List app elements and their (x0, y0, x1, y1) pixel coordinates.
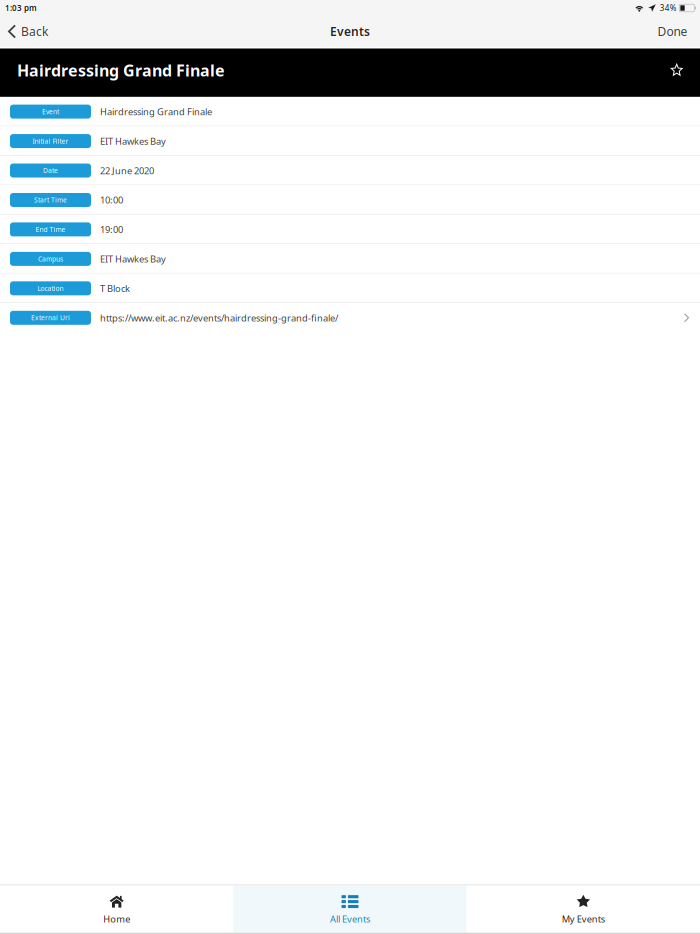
button[interactable]: End Time (0, 215, 700, 244)
staticText: Event (42, 107, 59, 116)
staticText: 22 June 2020 (100, 164, 154, 177)
button[interactable]: Event (0, 97, 700, 126)
staticText: Back (21, 23, 48, 39)
staticText: 1:03 pm (5, 3, 37, 13)
staticText: Home (103, 913, 130, 925)
staticText: EIT Hawkes Bay (100, 253, 166, 265)
staticText: External Url (31, 313, 70, 322)
button[interactable]: All Events (233, 886, 467, 933)
staticText: Initial Filter (32, 137, 68, 145)
staticText: Location (37, 284, 63, 293)
staticText: https://www.eit.ac.nz/events/hairdressin… (100, 312, 338, 324)
staticText: End Time (35, 225, 65, 234)
button[interactable]: My Events (467, 886, 700, 933)
staticText: Hairdressing Grand Finale (100, 105, 212, 118)
staticText: My Events (562, 913, 605, 925)
staticText: Campus (38, 254, 63, 263)
button[interactable]: Done (649, 16, 700, 46)
button[interactable]: External Url (0, 303, 700, 332)
staticText: All Events (330, 913, 370, 925)
button[interactable]: Add to favourites (671, 64, 700, 81)
button[interactable]: Location (0, 274, 700, 303)
staticText: Done (657, 23, 687, 39)
button[interactable]: Campus (0, 244, 700, 274)
button[interactable]: Initial Filter (0, 126, 700, 156)
staticText: 34% (660, 3, 677, 13)
staticText: Date (43, 166, 58, 175)
button[interactable]: Date (0, 156, 700, 185)
staticText: Hairdressing Grand Finale (17, 60, 225, 81)
staticText: Events (330, 23, 370, 39)
staticText: 10:00 (100, 194, 123, 206)
staticText: 19:00 (100, 223, 123, 236)
staticText: Start Time (34, 195, 67, 204)
staticText: T Block (100, 282, 130, 294)
staticText: EIT Hawkes Bay (100, 135, 166, 147)
button[interactable]: Start Time (0, 185, 700, 215)
button[interactable]: Home (0, 886, 233, 933)
button[interactable]: Back (0, 16, 54, 46)
